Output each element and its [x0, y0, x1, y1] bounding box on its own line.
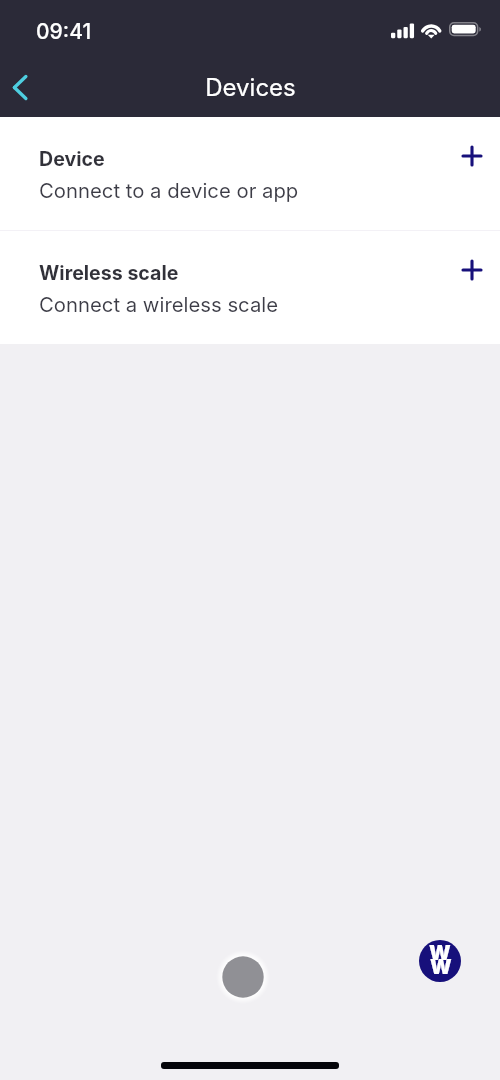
staticText: W — [429, 941, 451, 965]
button[interactable]: Back — [0, 63, 44, 111]
button[interactable]: Add Wireless scale — [450, 248, 494, 292]
staticText: Connect to a device or app — [39, 178, 299, 203]
button[interactable]: Wireless scale — [0, 231, 500, 344]
staticText: W — [430, 955, 452, 979]
button[interactable]: Device — [0, 117, 500, 230]
staticText: Device — [39, 147, 105, 171]
button[interactable]: Add Device — [450, 134, 494, 178]
staticText: Devices — [205, 73, 296, 102]
button[interactable]: Record — [216, 950, 270, 1004]
staticText: 09:41 — [36, 19, 92, 44]
staticText: Connect a wireless scale — [39, 292, 279, 317]
staticText: Wireless scale — [39, 261, 179, 285]
button[interactable]: WW assistant — [419, 940, 461, 982]
